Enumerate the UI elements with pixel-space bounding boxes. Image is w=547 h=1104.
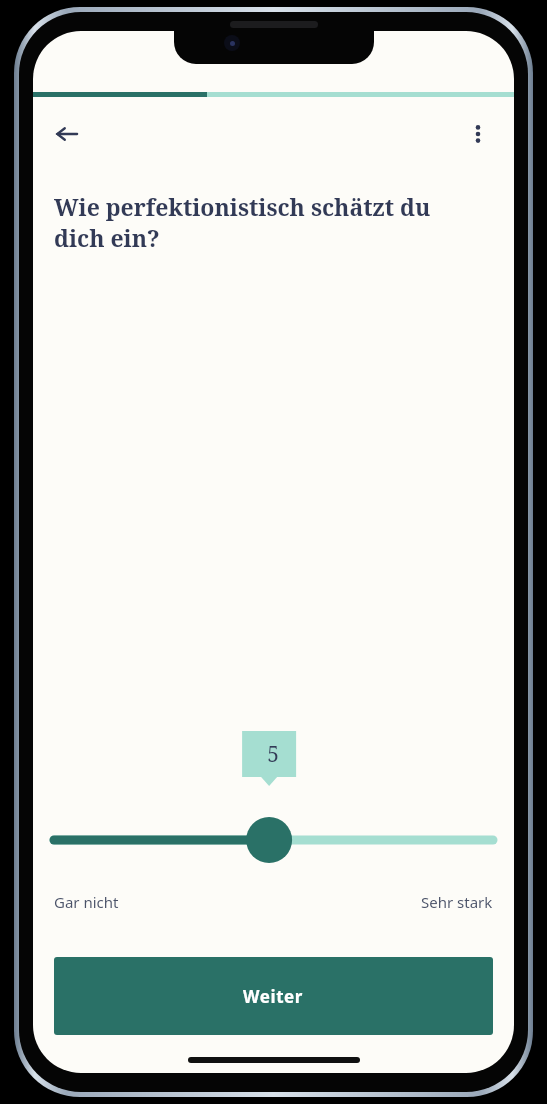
staticText: Sehr stark bbox=[421, 892, 493, 912]
staticText: Gar nicht bbox=[54, 892, 119, 912]
button[interactable]: More options bbox=[454, 110, 502, 158]
button[interactable]: Weiter bbox=[54, 957, 493, 1035]
staticText: Weiter bbox=[243, 985, 304, 1008]
staticText: Wie perfektionistisch schätzt du dich ei… bbox=[54, 191, 484, 254]
button[interactable]: Back bbox=[43, 110, 91, 158]
staticText: 5 bbox=[43, 740, 279, 769]
button[interactable]: Rating slider, value 5 of 10 bbox=[33, 812, 514, 868]
